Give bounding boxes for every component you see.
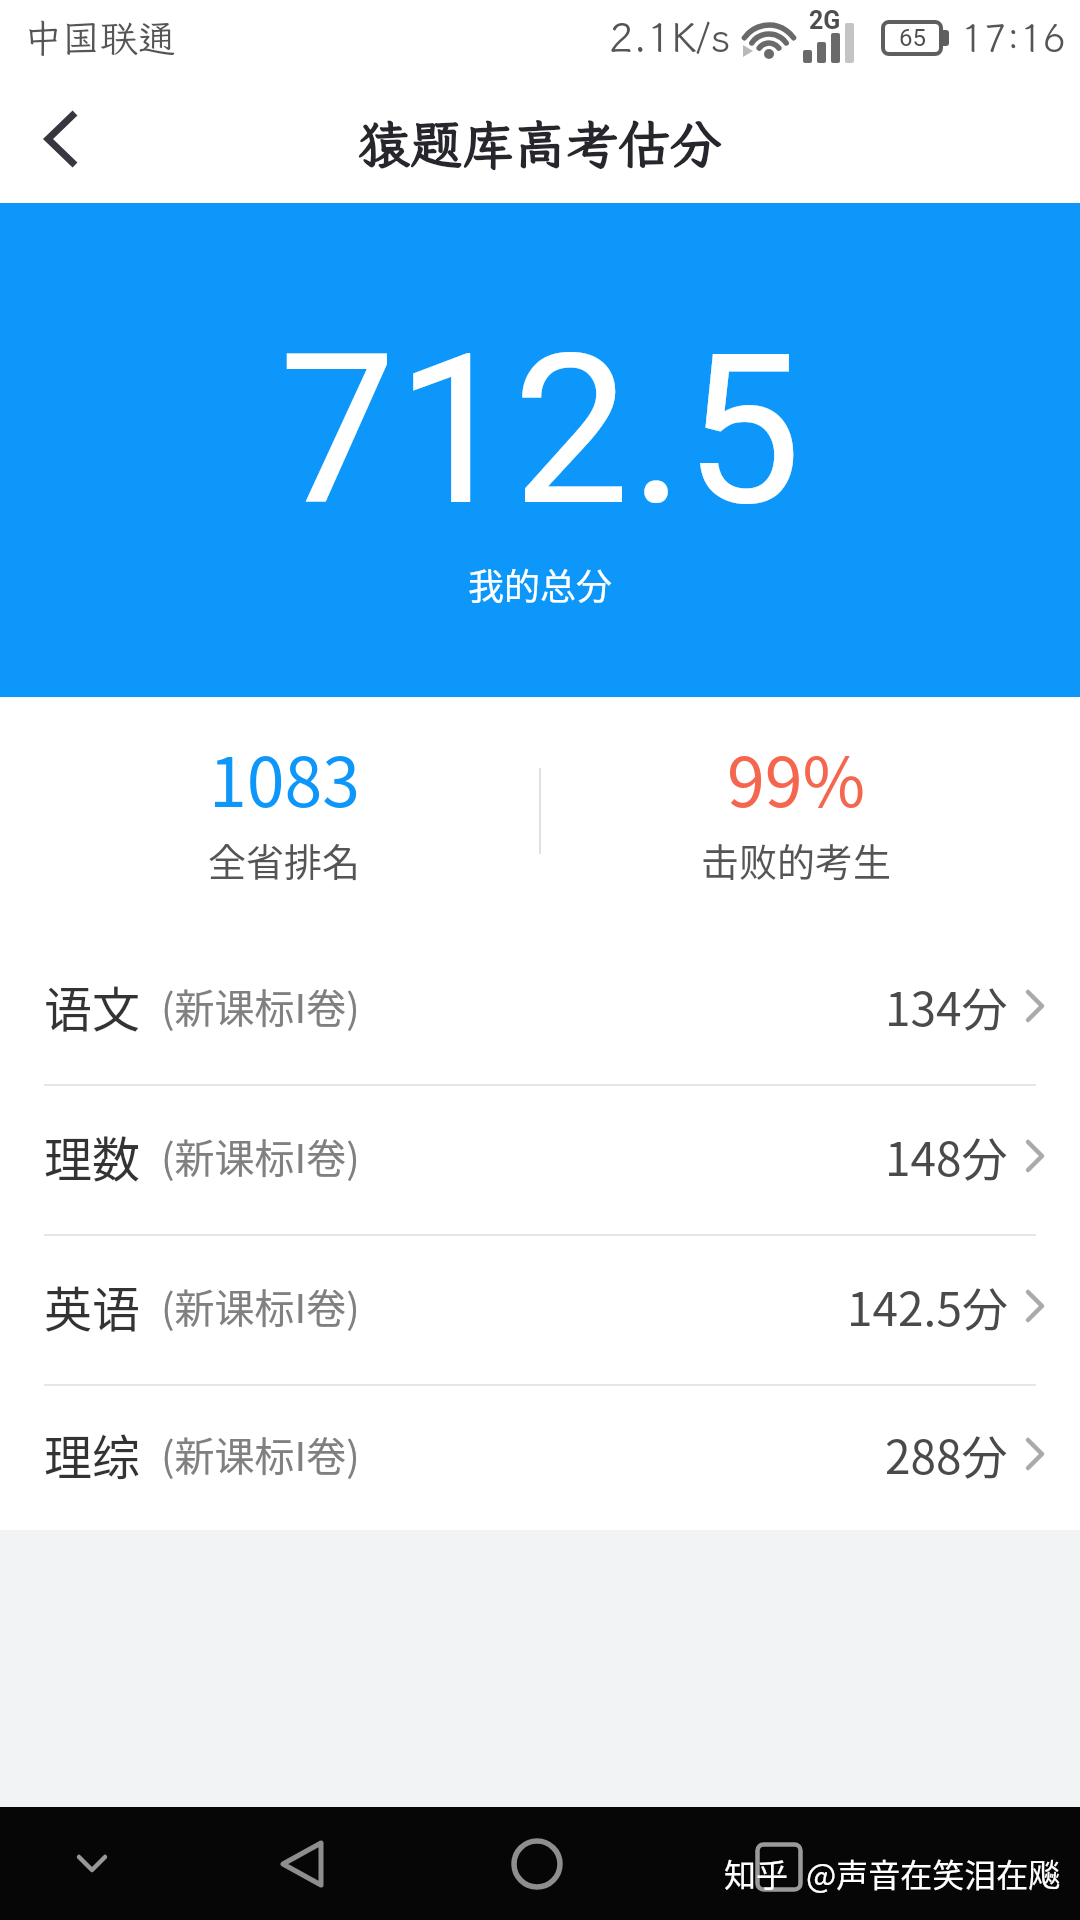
staticText: 2.1K/s: [609, 11, 731, 64]
staticText: 99%: [727, 728, 866, 826]
staticText: 17:16: [961, 13, 1066, 63]
staticText: 中国联通: [24, 13, 177, 63]
staticText: @声音在笑泪在飚: [806, 1850, 1061, 1896]
staticText: 148分: [885, 1123, 1008, 1190]
staticText: 知乎: [724, 1850, 789, 1896]
staticText: (新课标I卷): [161, 1425, 360, 1483]
staticText: 语文: [44, 971, 141, 1041]
button[interactable]: [26, 94, 96, 184]
staticText: 英语: [44, 1271, 141, 1341]
staticText: 猿题库高考估分: [358, 109, 723, 177]
button[interactable]: [730, 1807, 830, 1920]
button[interactable]: [487, 1807, 587, 1920]
staticText: 1083: [209, 728, 360, 826]
staticText: 全省排名: [208, 832, 361, 887]
staticText: (新课标I卷): [161, 977, 360, 1035]
staticText: 134分: [885, 973, 1008, 1040]
button[interactable]: [52, 1807, 132, 1920]
staticText: 击败的考生: [701, 832, 892, 887]
staticText: 65: [899, 24, 926, 52]
button[interactable]: 语文: [0, 936, 1080, 1084]
button[interactable]: [252, 1807, 352, 1920]
staticText: 我的总分: [468, 558, 613, 610]
button[interactable]: 99%: [540, 697, 1052, 936]
staticText: 142.5分: [847, 1273, 1008, 1340]
staticText: 理数: [44, 1121, 141, 1191]
staticText: 712.5: [279, 309, 802, 553]
button[interactable]: 英语: [0, 1236, 1080, 1384]
staticText: (新课标I卷): [161, 1127, 360, 1185]
staticText: 2G: [809, 6, 841, 35]
staticText: (新课标I卷): [161, 1277, 360, 1335]
button[interactable]: 1083: [28, 697, 540, 936]
staticText: 288分: [885, 1421, 1008, 1488]
button[interactable]: 理综: [0, 1386, 1080, 1530]
button[interactable]: 理数: [0, 1086, 1080, 1234]
staticText: 理综: [44, 1419, 141, 1489]
